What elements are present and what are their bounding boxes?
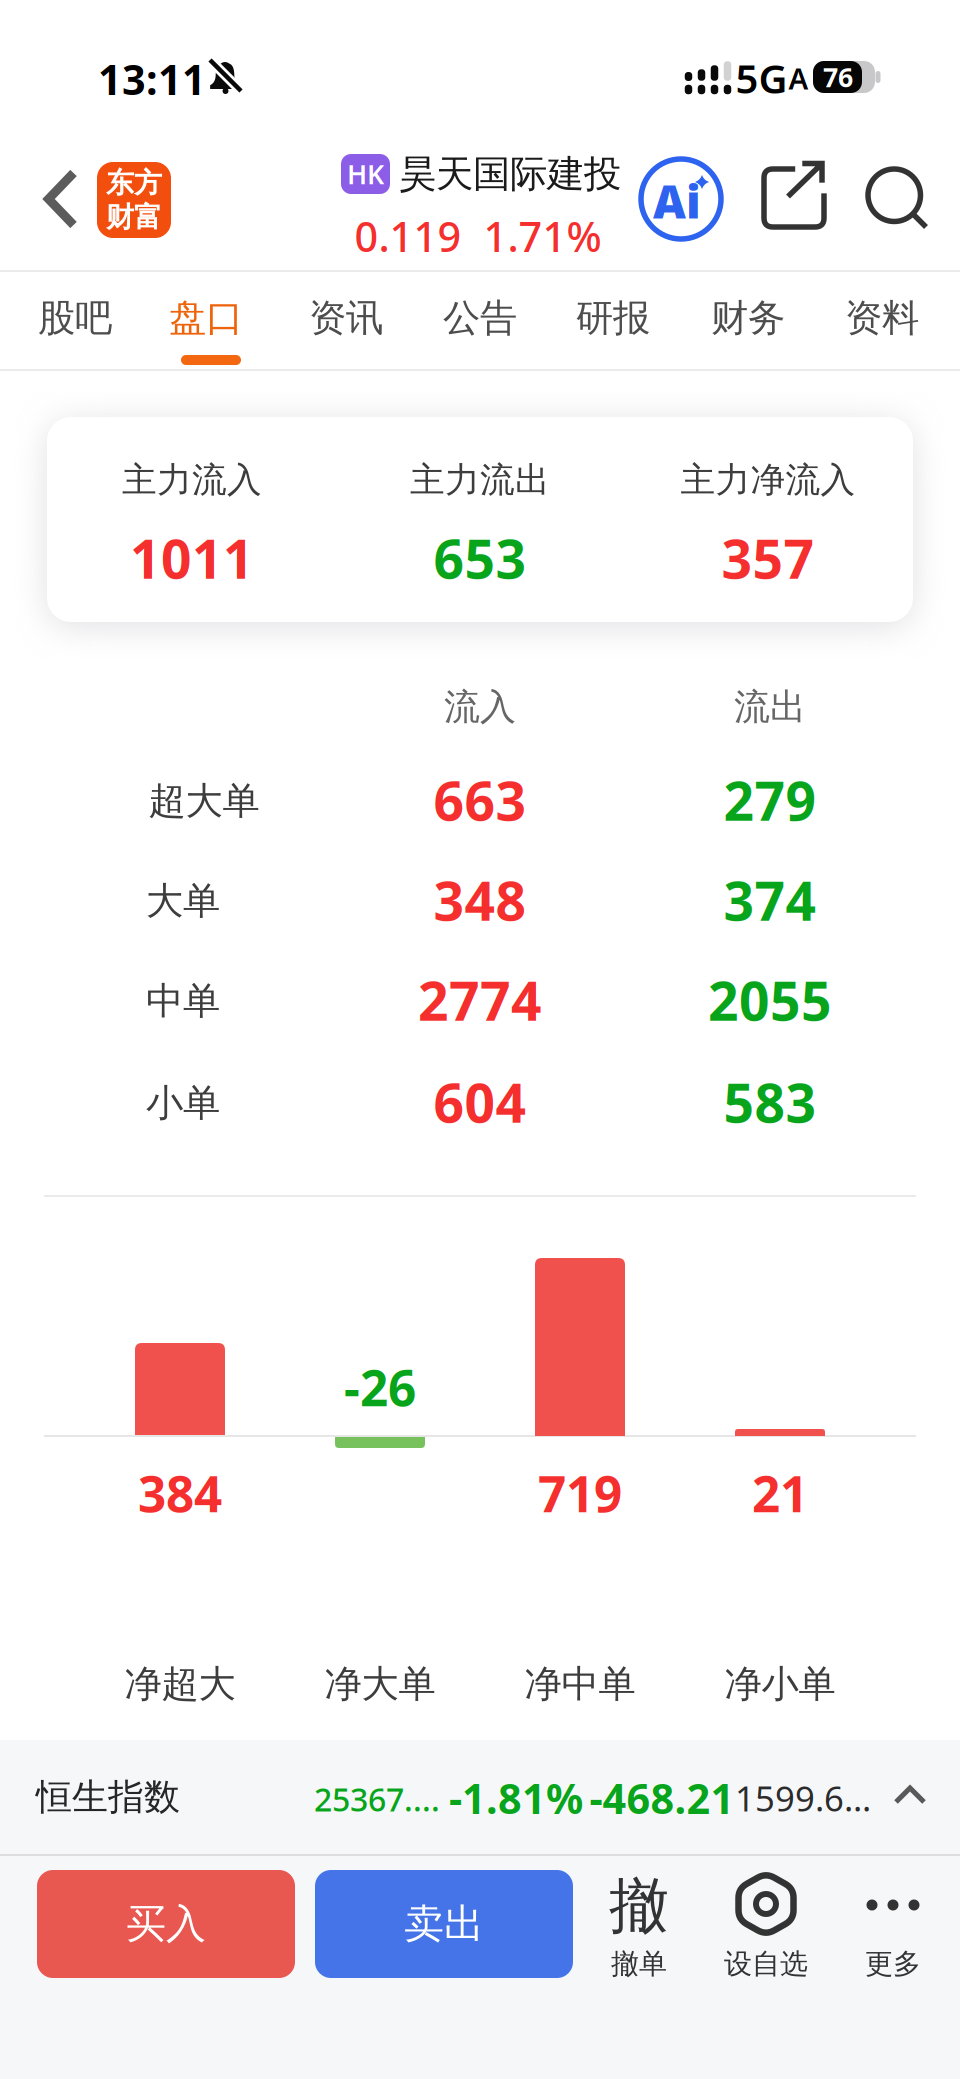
staticText: 昊天国际建投	[399, 151, 621, 197]
staticText: -1.81%	[449, 1771, 583, 1825]
staticText: 主力流出	[410, 459, 550, 501]
staticText: 净超大	[124, 1661, 235, 1707]
staticText: 2055	[708, 965, 832, 1035]
staticText: 更多	[865, 1947, 921, 1981]
button[interactable]: 资料	[827, 280, 937, 356]
staticText: 279	[723, 765, 816, 835]
staticText: 大单	[146, 878, 220, 924]
staticText: 恒生指数	[36, 1775, 180, 1819]
staticText: 719	[538, 1460, 622, 1526]
staticText: 主力流入	[122, 459, 262, 501]
staticText: 604	[433, 1067, 526, 1137]
button[interactable]: 卖出	[315, 1870, 573, 1978]
button[interactable]: 财务	[693, 280, 803, 356]
button[interactable]: 搜索	[865, 166, 929, 230]
staticText: Ai	[653, 171, 701, 231]
button[interactable]: 资讯	[291, 280, 401, 356]
staticText: 小单	[146, 1080, 220, 1126]
staticText: 中单	[146, 978, 220, 1024]
staticText: 5G	[735, 51, 787, 104]
button[interactable]: 恒生指数	[0, 1740, 960, 1855]
staticText: -26	[344, 1354, 416, 1420]
staticText: 1.71%	[483, 209, 601, 263]
staticText: HK	[347, 156, 384, 192]
staticText: 净中单	[524, 1661, 635, 1707]
staticText: 净大单	[324, 1661, 435, 1707]
staticText: -468.21	[589, 1771, 734, 1825]
staticText: 357	[721, 523, 814, 593]
staticText: 583	[723, 1067, 816, 1137]
staticText: 资讯	[309, 295, 383, 341]
staticText: 25367....	[314, 1778, 440, 1820]
staticText: 653	[433, 523, 526, 593]
staticText: 13:11	[98, 52, 206, 106]
staticText: 卖出	[404, 1899, 484, 1948]
staticText: 76	[823, 59, 853, 95]
staticText: 股吧	[38, 295, 112, 341]
button[interactable]: AI助手	[639, 157, 723, 241]
staticText: A	[788, 58, 808, 97]
staticText: 研报	[576, 295, 650, 341]
staticText: 东方	[106, 166, 162, 200]
staticText: 流入	[444, 685, 516, 729]
staticText: 1599.6...	[735, 1775, 871, 1821]
staticText: 撤	[609, 1869, 669, 1943]
button[interactable]: 东方财富	[97, 162, 171, 238]
button[interactable]: 撤	[589, 1855, 689, 2005]
staticText: 净小单	[724, 1661, 835, 1707]
staticText: 348	[433, 865, 526, 935]
staticText: 资料	[845, 295, 919, 341]
staticText: 374	[723, 865, 816, 935]
staticText: 盘口	[169, 295, 243, 341]
button[interactable]: 更多	[843, 1855, 943, 2005]
staticText: 21	[752, 1460, 808, 1526]
staticText: 撤单	[611, 1947, 667, 1981]
staticText: 主力净流入	[680, 459, 855, 501]
button[interactable]: Back	[36, 165, 85, 233]
staticText: 买入	[126, 1899, 206, 1948]
button[interactable]: 买入	[37, 1870, 295, 1978]
button[interactable]: 股吧	[20, 280, 130, 356]
staticText: 663	[433, 765, 526, 835]
staticText: 0.119	[354, 209, 461, 263]
staticText: 设自选	[724, 1947, 808, 1981]
staticText: 财务	[711, 295, 785, 341]
button[interactable]: 设自选	[706, 1855, 826, 2005]
staticText: 财富	[106, 200, 162, 234]
staticText: 2774	[418, 965, 542, 1035]
staticText: 384	[138, 1460, 222, 1526]
staticText: 超大单	[148, 778, 259, 824]
button[interactable]: 分享	[762, 167, 826, 229]
button[interactable]: 公告	[425, 280, 535, 356]
staticText: 流出	[734, 685, 806, 729]
staticText: 公告	[443, 295, 517, 341]
button[interactable]: 研报	[558, 280, 668, 356]
staticText: 1011	[130, 523, 254, 593]
button[interactable]: 盘口	[151, 280, 261, 356]
button[interactable]: HK	[341, 151, 621, 197]
